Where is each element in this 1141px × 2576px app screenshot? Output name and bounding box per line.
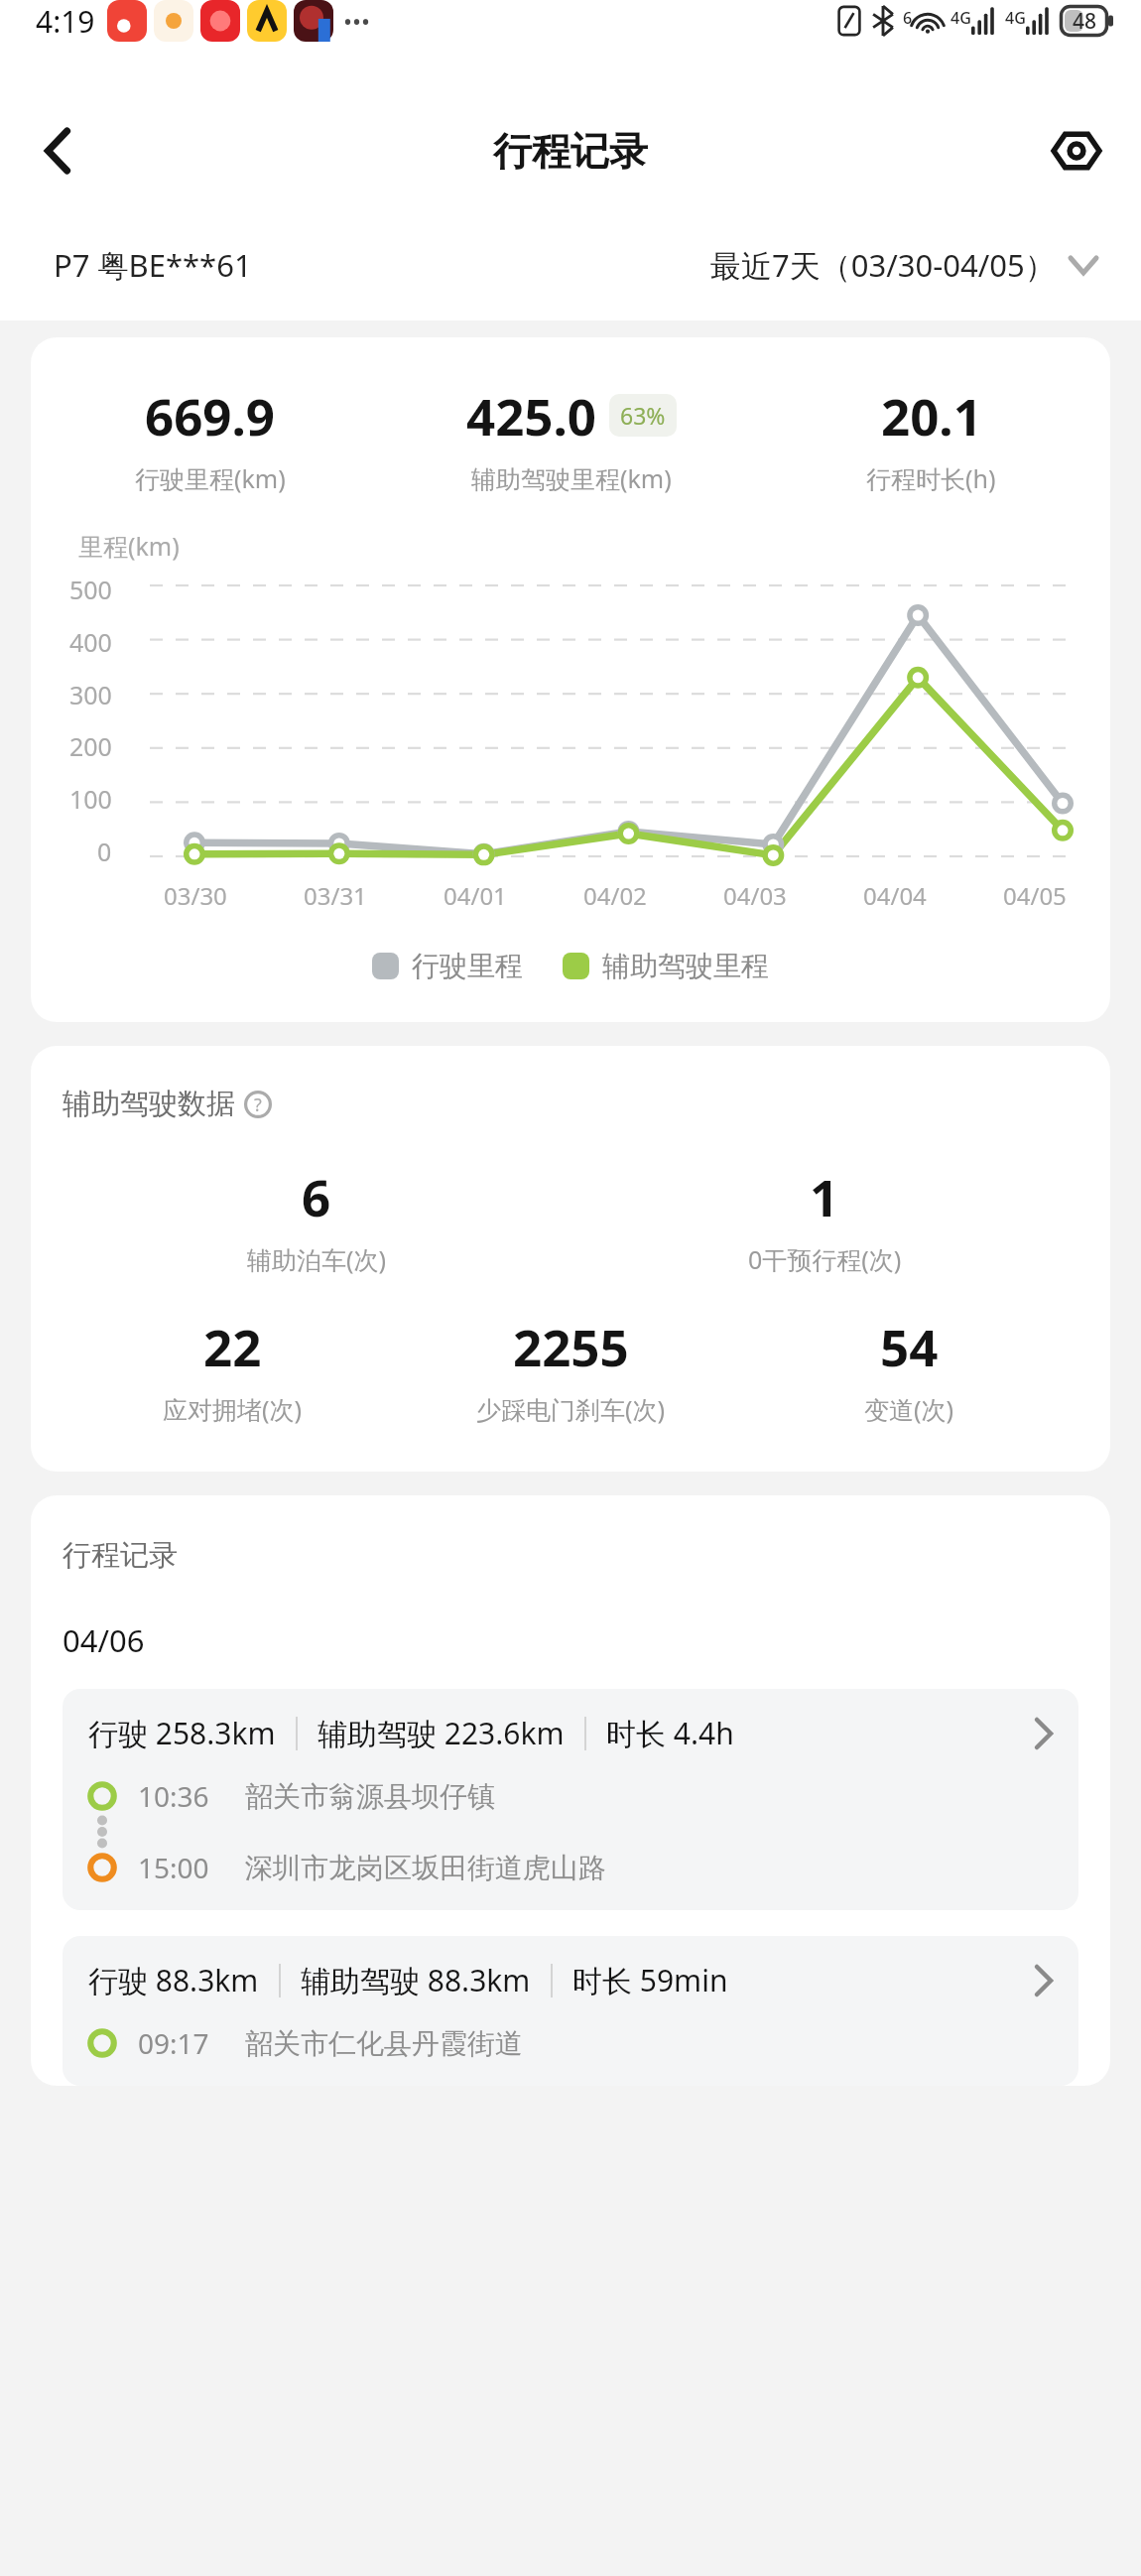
staticText: 6 (903, 7, 913, 29)
staticText: 行程记录 (493, 127, 648, 176)
staticText: 应对拥堵(次) (163, 1392, 303, 1426)
staticText: 54 (880, 1312, 939, 1380)
button[interactable]: Settings (1038, 112, 1115, 190)
staticText: 最近7天（03/30-04/05） (710, 244, 1056, 286)
staticText: 韶关市仁化县丹霞街道 (245, 2026, 523, 2061)
staticText: 425.0 (466, 381, 597, 450)
staticText: 辅助驾驶里程(km) (471, 461, 672, 495)
staticText: 04/04 (863, 879, 927, 912)
button[interactable]: Back (20, 113, 95, 189)
staticText: 4:19 (36, 1, 95, 42)
staticText: 辅助驾驶里程 (602, 949, 769, 983)
staticText: 变道(次) (864, 1392, 954, 1426)
staticText: 15:00 (138, 1849, 209, 1886)
staticText: 100 (69, 782, 112, 816)
staticText: 669.9 (145, 381, 276, 450)
button[interactable]: 行驶 88.3km (63, 1936, 1078, 2086)
staticText: 行驶里程(km) (135, 461, 286, 495)
button[interactable]: 辅助驾驶里程 (560, 946, 772, 986)
staticText: 辅助泊车(次) (247, 1242, 387, 1276)
staticText: 03/30 (164, 879, 227, 912)
staticText: 04/03 (723, 879, 787, 912)
staticText: 行驶 88.3km (88, 1960, 259, 2000)
staticText: 1 (810, 1162, 839, 1230)
staticText: P7 粤BE***61 (54, 244, 252, 286)
button[interactable]: 行驶 258.3km (63, 1689, 1078, 1910)
staticText: 500 (69, 573, 112, 606)
staticText: 时长 59min (572, 1960, 728, 2000)
staticText: 时长 4.4h (606, 1713, 734, 1753)
staticText: 63% (620, 400, 666, 431)
staticText: 20.1 (881, 381, 982, 450)
staticText: 行驶里程 (412, 949, 523, 983)
staticText: 0干预行程(次) (748, 1242, 902, 1276)
staticText: 4G (1005, 7, 1026, 29)
staticText: ••• (343, 5, 371, 38)
staticText: 6 (302, 1162, 331, 1230)
staticText: 200 (69, 729, 112, 763)
staticText: 辅助驾驶 223.6km (317, 1713, 565, 1753)
staticText: 09:17 (138, 2024, 209, 2062)
staticText: 04/02 (583, 879, 647, 912)
staticText: 行驶 258.3km (88, 1713, 276, 1753)
staticText: 04/01 (444, 879, 507, 912)
staticText: 深圳市龙岗区坂田街道虎山路 (245, 1851, 606, 1885)
button[interactable]: 最近7天（03/30-04/05） (706, 240, 1101, 290)
staticText: 韶关市翁源县坝仔镇 (245, 1779, 495, 1814)
staticText: 里程(km) (78, 529, 180, 563)
staticText: 400 (69, 625, 112, 659)
staticText: 少踩电门刹车(次) (476, 1392, 666, 1426)
staticText: 4G (951, 7, 971, 29)
staticText: 300 (69, 678, 112, 711)
staticText: 48 (1073, 7, 1097, 36)
staticText: 03/31 (304, 879, 367, 912)
staticText: 行程时长(h) (866, 461, 996, 495)
staticText: 22 (203, 1312, 262, 1380)
staticText: 04/05 (1003, 879, 1067, 912)
staticText: 04/06 (63, 1619, 145, 1661)
staticText: 2255 (513, 1312, 629, 1380)
staticText: 辅助驾驶数据 (63, 1086, 235, 1122)
staticText: 行程记录 (63, 1537, 178, 1574)
staticText: ? (254, 1093, 262, 1117)
staticText: 0 (97, 835, 112, 868)
staticText: 10:36 (138, 1777, 209, 1815)
button[interactable]: 行驶里程 (369, 946, 526, 986)
staticText: 辅助驾驶 88.3km (301, 1960, 531, 2000)
